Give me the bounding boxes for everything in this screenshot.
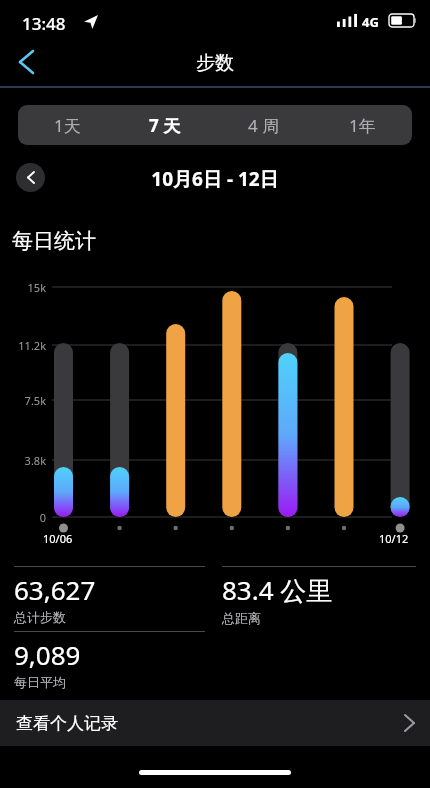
staticText: 4 周 — [248, 114, 280, 137]
button[interactable]: 查看个人记录 — [0, 700, 430, 746]
button[interactable]: 1年 — [313, 105, 412, 145]
staticText: 15k — [0, 280, 46, 295]
staticText: 步数 — [0, 51, 430, 75]
button[interactable]: Back — [4, 40, 48, 84]
staticText: 每日统计 — [12, 228, 96, 254]
button[interactable]: 4 周 — [214, 105, 313, 145]
staticText: 每日平均 — [14, 674, 66, 690]
staticText: 查看个人记录 — [16, 713, 118, 734]
staticText: 1天 — [54, 114, 81, 137]
staticText: 83.4 公里 — [222, 572, 333, 608]
staticText: 1年 — [349, 114, 376, 137]
staticText: 7 天 — [149, 114, 181, 137]
staticText: 7.5k — [0, 393, 46, 408]
staticText: 10/06 — [43, 531, 73, 546]
staticText: 13:48 — [22, 12, 66, 35]
staticText: 0 — [0, 510, 46, 525]
staticText: 63,627 — [14, 572, 96, 607]
staticText: 10月6日 - 12日 — [0, 166, 430, 192]
staticText: 9,089 — [14, 637, 81, 672]
staticText: 11.2k — [0, 338, 46, 353]
staticText: 总计步数 — [14, 609, 66, 625]
button[interactable]: 7 天 — [116, 105, 214, 145]
staticText: 10/12 — [379, 531, 409, 546]
staticText: 3.8k — [0, 453, 46, 468]
staticText: 4G — [362, 13, 379, 31]
button[interactable]: 1天 — [18, 105, 116, 145]
staticText: 总距离 — [222, 610, 261, 626]
button[interactable]: Previous period — [16, 163, 45, 192]
